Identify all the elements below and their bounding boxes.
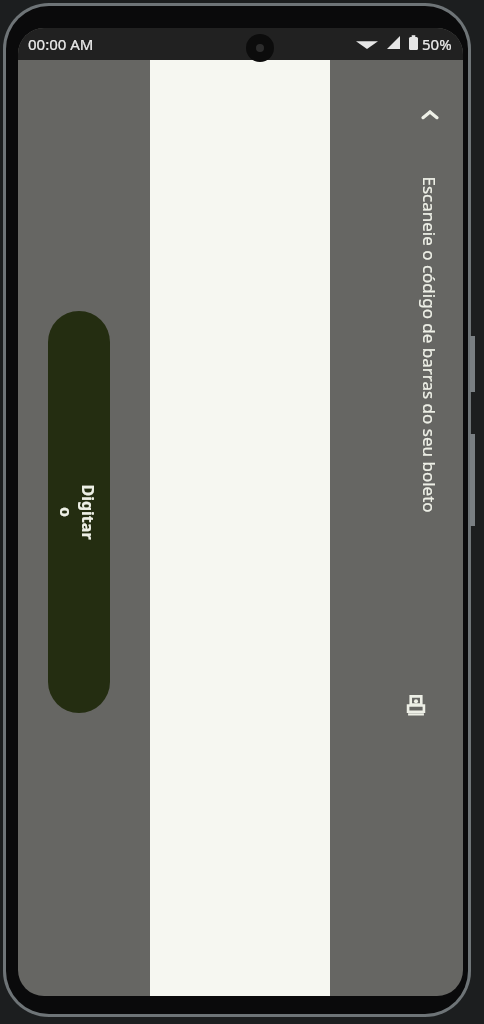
staticText: Digitar o código de barras do boleto <box>59 481 99 543</box>
staticText: 50% <box>422 34 452 54</box>
staticText: 00:00 AM <box>28 34 94 54</box>
button[interactable]: Digitar o código de barras do boleto <box>48 311 110 713</box>
button[interactable]: Recolher <box>406 91 454 139</box>
staticText: Escaneie o código de barras do seu bolet… <box>418 176 441 513</box>
button[interactable]: Lanterna <box>394 684 438 728</box>
